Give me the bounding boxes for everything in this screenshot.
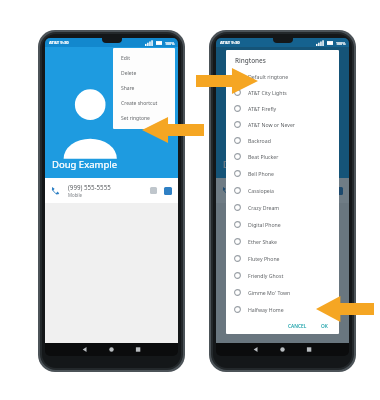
staticText: AT&T City Lights (248, 89, 287, 96)
button[interactable]: Flutey Phone (226, 250, 339, 267)
button[interactable]: Backroad (226, 132, 339, 148)
staticText: Create shortcut (121, 100, 158, 107)
staticText: Edit (121, 55, 130, 62)
button[interactable]: Ether Shake (226, 233, 339, 250)
button[interactable]: Beat Plucker (226, 148, 339, 165)
button[interactable]: Digital Phone (226, 216, 339, 233)
staticText: Mobile (239, 192, 254, 198)
staticText: AT&T 9:30 (49, 40, 69, 46)
other: Pointer arrow (142, 117, 204, 143)
staticText: 100% (336, 41, 346, 46)
button[interactable]: Set ringtone (113, 111, 175, 126)
staticText: AT&T 9:30 (220, 40, 240, 46)
button[interactable]: Share (113, 81, 175, 96)
staticText: Cassiopeia (248, 187, 274, 194)
button[interactable]: Default ringtone (226, 68, 339, 84)
staticText: Halfway Home (248, 306, 284, 313)
button[interactable]: Bell Phone (226, 165, 339, 182)
button[interactable]: Gimme Mo' Town (226, 284, 339, 301)
staticText: Ether Shake (248, 238, 278, 245)
button[interactable]: Friendly Ghost (226, 267, 339, 284)
button[interactable]: Halfway Home (226, 301, 339, 318)
button[interactable]: Create shortcut (113, 96, 175, 111)
staticText: Bell Phone (248, 170, 274, 177)
staticText: Delete (121, 70, 137, 77)
staticText: CANCEL (288, 323, 307, 330)
staticText: Beat Plucker (248, 153, 279, 160)
staticText: Crazy Dream (248, 204, 280, 211)
staticText: AT&T Now or Never (248, 121, 295, 128)
button[interactable]: Crazy Dream (226, 199, 339, 216)
button[interactable]: (999) 555-5555 (216, 178, 349, 203)
staticText: Digital Phone (248, 221, 281, 228)
staticText: Doug Example (52, 158, 118, 171)
staticText: Share (121, 85, 135, 92)
button[interactable]: AT&T Firefly (226, 100, 339, 116)
button[interactable]: AT&T Now or Never (226, 116, 339, 132)
staticText: Backroad (248, 137, 271, 144)
staticText: Flutey Phone (248, 255, 280, 262)
staticText: Mobile (68, 192, 83, 198)
button[interactable]: (999) 555-5555 (45, 178, 178, 203)
button[interactable]: AT&T City Lights (226, 84, 339, 100)
staticText: Friendly Ghost (248, 272, 284, 279)
staticText: Gimme Mo' Town (248, 289, 291, 296)
button[interactable]: Cassiopeia (226, 182, 339, 199)
staticText: OK (321, 323, 328, 330)
staticText: (999) 555-5555 (239, 183, 282, 191)
staticText: Ringtones (235, 56, 266, 65)
button[interactable]: OK (317, 321, 332, 332)
button[interactable]: Delete (113, 66, 175, 81)
button[interactable]: Edit (113, 51, 175, 66)
staticText: Default ringtone (248, 73, 289, 80)
staticText: Doug Example (223, 158, 289, 171)
staticText: 100% (165, 41, 175, 46)
staticText: AT&T Firefly (248, 105, 277, 112)
button[interactable]: CANCEL (284, 321, 311, 332)
staticText: (999) 555-5555 (68, 183, 111, 191)
other: Pointer arrow (196, 68, 258, 94)
staticText: Set ringtone (121, 115, 150, 122)
other: Pointer arrow (316, 296, 374, 322)
